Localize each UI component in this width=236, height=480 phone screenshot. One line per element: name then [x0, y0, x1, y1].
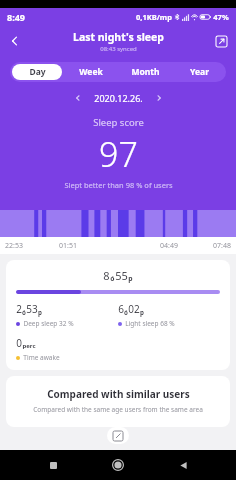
button[interactable]: Edit — [107, 427, 129, 444]
staticText: 22:53 — [5, 241, 23, 251]
staticText: 01:51 — [59, 241, 77, 251]
staticText: 47% — [213, 12, 229, 22]
staticText: Month — [131, 66, 160, 78]
button[interactable]: Next day — [151, 90, 167, 106]
button[interactable]: Day — [12, 64, 62, 80]
button[interactable]: Week — [66, 64, 116, 80]
staticText: 08:43 synced — [100, 45, 137, 53]
button[interactable]: Compared with similar users — [6, 376, 230, 427]
staticText: 0 — [16, 336, 22, 350]
button[interactable]: Back — [0, 26, 30, 56]
staticText: Time awake — [23, 353, 60, 362]
button[interactable]: Previous day — [70, 90, 86, 106]
staticText: 8 — [103, 268, 110, 283]
staticText: Sleep score — [93, 116, 144, 129]
button[interactable]: Back — [171, 453, 195, 477]
staticText: 02 — [128, 302, 140, 316]
staticText: Compared with the same age users from th… — [33, 405, 203, 414]
button[interactable]: Year — [174, 64, 224, 80]
staticText: 2 — [16, 302, 22, 316]
button[interactable]: Home — [106, 453, 130, 477]
staticText: 6 — [118, 302, 124, 316]
staticText: Last night's sleep — [73, 30, 164, 44]
staticText: 8:49 — [7, 11, 25, 23]
staticText: 0,1KB/mp — [136, 12, 172, 22]
button[interactable]: 8 — [6, 260, 230, 370]
staticText: ó — [124, 308, 128, 316]
button[interactable]: Month — [120, 64, 170, 80]
staticText: 97 — [99, 131, 138, 177]
button[interactable]: Share — [206, 26, 236, 56]
staticText: Year — [190, 66, 209, 78]
staticText: Week — [79, 66, 103, 78]
staticText: Deep sleep 32 % — [23, 319, 74, 328]
staticText: 55 — [115, 268, 128, 283]
button[interactable]: Recents — [41, 453, 65, 477]
staticText: Compared with similar users — [47, 387, 190, 401]
staticText: p — [38, 308, 42, 316]
staticText: 2020.12.26. — [94, 92, 143, 104]
staticText: 53 — [26, 302, 38, 316]
staticText: Light sleep 68 % — [125, 319, 175, 328]
staticText: p — [140, 308, 144, 316]
staticText: 07:48 — [213, 241, 231, 251]
staticText: ó — [22, 308, 26, 316]
staticText: Slept better than 98 % of users — [64, 180, 173, 190]
staticText: Day — [29, 66, 46, 78]
staticText: perc — [22, 342, 36, 350]
staticText: 04:49 — [160, 241, 178, 251]
staticText: p — [128, 274, 133, 283]
staticText: ó — [110, 274, 115, 283]
